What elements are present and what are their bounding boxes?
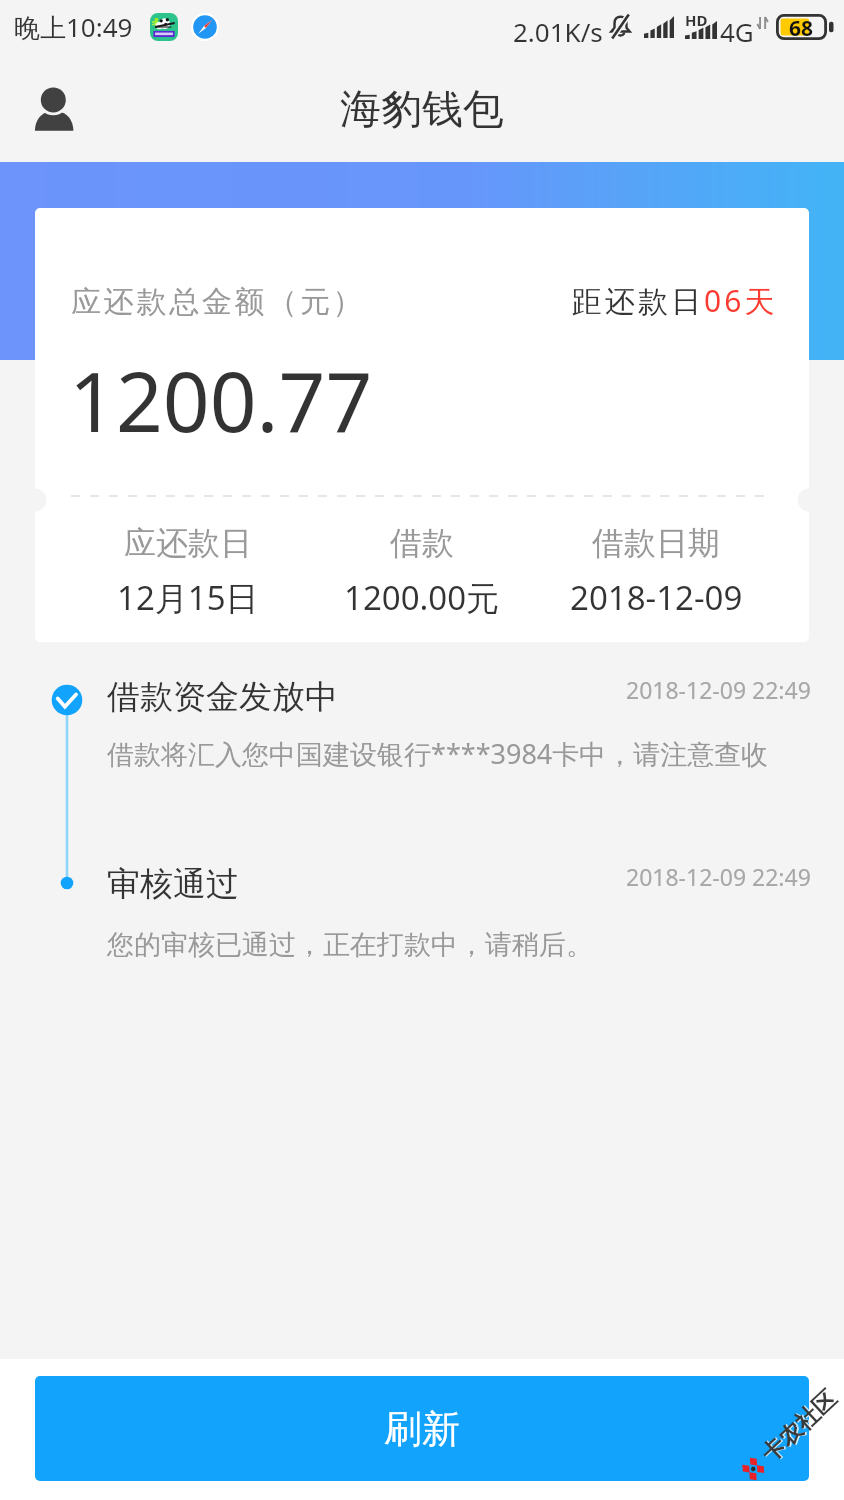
staticText: 2.01K/s	[513, 14, 603, 49]
staticText: 2018-12-09 22:49	[626, 861, 811, 892]
staticText: 2018-12-09 22:49	[626, 674, 811, 705]
staticText: 您的审核已通过，正在打款中，请稍后。	[107, 928, 593, 962]
button[interactable]: 刷新	[35, 1376, 809, 1481]
staticText: 晚上10:49	[14, 9, 133, 45]
staticText: 借款	[390, 523, 454, 563]
staticText: 卡农社区	[755, 1384, 842, 1468]
staticText: 借款日期	[592, 523, 720, 563]
staticText: 2018-12-09	[570, 575, 743, 620]
staticText: 4G	[720, 14, 754, 49]
staticText: 刷新	[384, 1405, 460, 1453]
staticText: 应还款总金额（元）	[71, 283, 366, 321]
staticText: 12月15日	[117, 575, 259, 620]
staticText: 距还款日06天	[572, 280, 778, 321]
staticText: 1200.77	[69, 344, 373, 456]
button[interactable]: Profile	[18, 71, 90, 147]
staticText: 借款将汇入您中国建设银行****3984卡中，请注意查收	[107, 735, 769, 772]
staticText: 68	[789, 14, 814, 40]
staticText: HD	[685, 10, 708, 30]
staticText: 审核通过	[107, 863, 239, 905]
staticText: 1200.00元	[344, 575, 500, 620]
staticText: 借款资金发放中	[107, 676, 338, 718]
staticText: 应还款日	[124, 523, 252, 563]
staticText: 卡农社区	[757, 1384, 844, 1468]
staticText: 海豹钱包	[340, 84, 504, 136]
